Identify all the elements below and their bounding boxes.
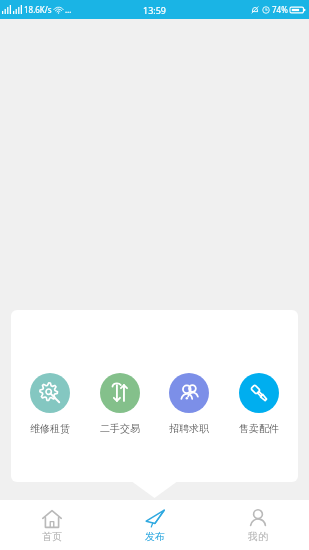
button[interactable]: 招聘求职 bbox=[158, 372, 220, 436]
staticText: 招聘求职 bbox=[169, 422, 209, 435]
button[interactable]: 维修租赁 bbox=[19, 372, 81, 436]
button[interactable]: 我的 bbox=[206, 500, 309, 550]
button[interactable]: 二手交易 bbox=[89, 372, 151, 436]
staticText: 发布 bbox=[145, 530, 165, 543]
staticText: 13:59 bbox=[143, 4, 167, 16]
button[interactable]: 售卖配件 bbox=[228, 372, 290, 436]
button[interactable]: 首页 bbox=[0, 500, 103, 550]
staticText: … bbox=[65, 4, 72, 15]
button[interactable]: 发布 bbox=[103, 500, 206, 550]
staticText: 售卖配件 bbox=[239, 422, 279, 435]
staticText: 74% bbox=[272, 4, 288, 15]
staticText: 首页 bbox=[42, 530, 62, 543]
staticText: 我的 bbox=[248, 530, 268, 543]
staticText: 维修租赁 bbox=[30, 422, 70, 435]
staticText: 二手交易 bbox=[100, 422, 140, 435]
staticText: 18.6K/s bbox=[24, 4, 52, 15]
